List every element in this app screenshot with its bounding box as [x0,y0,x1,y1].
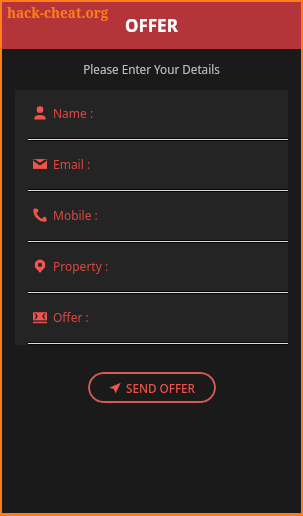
staticText: OFFER [125,14,178,37]
button[interactable]: Property : [15,243,288,294]
button[interactable]: Mobile : [15,192,288,243]
button[interactable]: Email : [15,141,288,192]
staticText: Offer : [53,309,89,325]
button[interactable]: SEND OFFER [88,372,216,403]
button[interactable]: Name : [15,90,288,141]
staticText: Email : [53,156,91,172]
staticText: SEND OFFER [126,380,195,396]
staticText: Mobile : [53,207,98,223]
staticText: Name : [53,105,94,121]
staticText: Please Enter Your Details [2,61,301,77]
staticText: hack-cheat.org [7,4,109,22]
staticText: Property : [53,258,109,274]
button[interactable]: Offer : [15,294,288,345]
